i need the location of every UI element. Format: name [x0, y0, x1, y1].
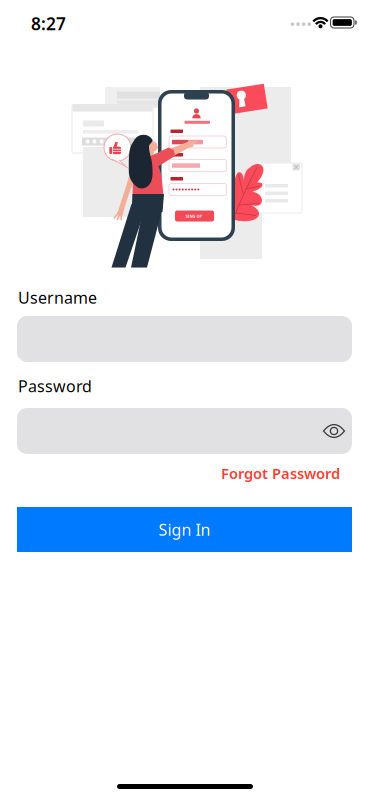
- staticText: Forgot Password: [221, 463, 340, 483]
- staticText: SING UP: [185, 213, 201, 219]
- button[interactable]: [17, 408, 352, 454]
- button[interactable]: Forgot Password: [221, 463, 340, 483]
- button[interactable]: [319, 416, 349, 446]
- staticText: 8:27: [31, 12, 66, 35]
- staticText: Sign In: [158, 519, 210, 540]
- button[interactable]: Sign In: [17, 507, 352, 552]
- staticText: Password: [18, 375, 92, 396]
- staticText: Username: [18, 287, 97, 308]
